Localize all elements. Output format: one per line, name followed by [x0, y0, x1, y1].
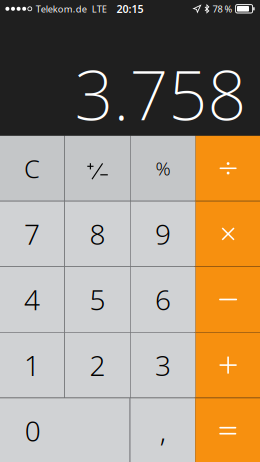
button[interactable]: 6	[131, 267, 196, 332]
button[interactable]: ,	[130, 398, 195, 462]
button[interactable]: Plus	[196, 333, 260, 398]
button[interactable]: Minus	[196, 267, 260, 332]
button[interactable]: 2	[65, 333, 130, 398]
staticText: 8	[89, 215, 105, 252]
staticText: ,	[160, 412, 166, 449]
staticText: 78 %	[213, 3, 233, 15]
staticText: 1	[24, 346, 40, 384]
button[interactable]: 5	[65, 267, 130, 332]
staticText: 7	[24, 215, 40, 252]
button[interactable]: Divide	[196, 136, 260, 201]
button[interactable]: 7	[0, 201, 64, 266]
button[interactable]: Multiply	[196, 201, 260, 266]
staticText: LTE	[92, 3, 107, 15]
button[interactable]: 9	[131, 201, 196, 266]
button[interactable]: 0	[0, 398, 130, 462]
button[interactable]: 4	[0, 267, 64, 332]
staticText: 6	[155, 281, 171, 318]
staticText: 20:15	[116, 2, 143, 16]
button[interactable]: %	[131, 136, 196, 201]
staticText: 3	[155, 346, 171, 384]
staticText: Telekom.de	[36, 3, 87, 15]
staticText: 3.758	[75, 49, 247, 139]
staticText: C	[24, 151, 40, 185]
button[interactable]: 1	[0, 333, 64, 398]
button[interactable]: C	[0, 136, 64, 201]
staticText: 4	[24, 281, 40, 318]
staticText: 2	[89, 346, 105, 384]
button[interactable]: Plus minus	[65, 136, 130, 201]
button[interactable]: 8	[65, 201, 130, 266]
button[interactable]: 3	[131, 333, 196, 398]
staticText: %	[156, 156, 171, 181]
button[interactable]: Equals	[195, 398, 260, 462]
staticText: 5	[89, 281, 105, 318]
staticText: 9	[155, 215, 171, 252]
staticText: 0	[25, 412, 41, 449]
